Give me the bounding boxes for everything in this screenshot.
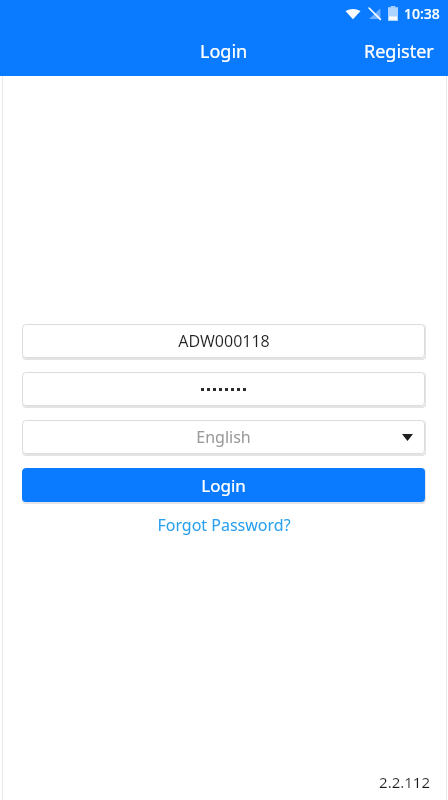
button[interactable]: Login	[186, 33, 262, 70]
staticText: Login	[200, 39, 248, 64]
staticText: Forgot Password?	[157, 514, 291, 536]
button[interactable]: Login	[22, 468, 425, 502]
staticText: Register	[364, 39, 434, 64]
button[interactable]: Text input field	[22, 324, 425, 358]
button[interactable]: Register	[350, 33, 448, 70]
staticText: English	[196, 426, 251, 448]
button[interactable]: Forgot Password?	[149, 510, 299, 540]
staticText: 2.2.112	[379, 772, 430, 792]
staticText: 10:38	[404, 4, 440, 23]
staticText: ADW000118	[178, 330, 270, 352]
staticText: Login	[201, 474, 246, 497]
button[interactable]: English	[22, 420, 425, 454]
button[interactable]: Text input field	[22, 372, 425, 406]
